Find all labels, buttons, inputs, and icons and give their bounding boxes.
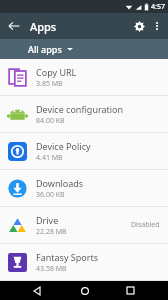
staticText: Device Policy: [36, 140, 91, 152]
button[interactable]: Copy URL: [0, 59, 168, 95]
staticText: Copy URL: [36, 66, 77, 78]
button[interactable]: Fantasy Sports: [0, 244, 168, 280]
staticText: Downloads: [36, 177, 84, 189]
button[interactable]: Drive: [0, 207, 168, 243]
staticText: Disabled: [131, 220, 160, 230]
button[interactable]: Back: [4, 16, 24, 36]
button[interactable]: Recent apps: [121, 281, 140, 300]
button[interactable]: Downloads: [0, 170, 168, 206]
button[interactable]: Settings: [129, 16, 149, 36]
staticText: Apps: [30, 19, 57, 34]
staticText: 4.41 MB: [36, 153, 63, 163]
button[interactable]: Device configuration: [0, 96, 168, 132]
button[interactable]: Device Policy: [0, 133, 168, 169]
staticText: 36.00 KB: [36, 190, 65, 200]
staticText: Device configuration: [36, 103, 124, 115]
button[interactable]: More options: [149, 18, 165, 34]
staticText: 84.00 KB: [36, 116, 65, 126]
button[interactable]: All apps: [0, 39, 168, 59]
staticText: Fantasy Sports: [36, 251, 99, 263]
button[interactable]: Home: [75, 281, 94, 300]
staticText: 4:57: [151, 2, 165, 12]
staticText: Drive: [36, 214, 59, 226]
staticText: 22.28 MB: [36, 227, 67, 237]
staticText: 43.58 MB: [36, 264, 67, 274]
button[interactable]: Back: [28, 281, 47, 300]
staticText: All apps: [28, 43, 62, 55]
staticText: 3.85 MB: [36, 79, 63, 89]
